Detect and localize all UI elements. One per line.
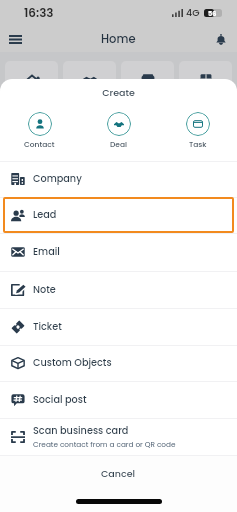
staticText: Home xyxy=(101,31,136,47)
button[interactable]: Shortcut xyxy=(179,61,232,99)
button[interactable]: Shortcut xyxy=(63,61,116,99)
button[interactable]: Email xyxy=(0,233,237,271)
staticText: Task xyxy=(189,139,207,149)
staticText: Create contact from a card or QR code xyxy=(33,439,176,449)
staticText: Scan business card xyxy=(33,424,129,438)
staticText: Cancel xyxy=(101,467,136,480)
staticText: Note xyxy=(33,283,56,297)
staticText: Deal xyxy=(110,139,128,149)
button[interactable]: Company xyxy=(0,161,237,197)
staticText: 16:33 xyxy=(24,4,54,21)
staticText: Company xyxy=(33,172,82,186)
button[interactable]: Ticket xyxy=(0,308,237,345)
staticText: Contact xyxy=(24,139,55,149)
staticText: Create xyxy=(0,86,237,99)
button[interactable]: Task xyxy=(158,110,237,151)
button[interactable]: Contact xyxy=(0,110,79,151)
button[interactable]: Note xyxy=(0,271,237,308)
button[interactable]: Shortcut xyxy=(121,61,174,99)
staticText: Custom Objects xyxy=(33,356,112,370)
button[interactable]: Cancel xyxy=(79,456,158,491)
button[interactable]: Lead xyxy=(3,197,234,233)
staticText: Ticket xyxy=(33,320,62,334)
staticText: 56 xyxy=(208,9,217,17)
button[interactable]: Shortcut xyxy=(5,61,58,99)
button[interactable]: Notifications xyxy=(208,30,237,49)
staticText: Lead xyxy=(33,208,57,222)
staticText: Email xyxy=(33,245,60,259)
button[interactable]: Menu xyxy=(0,29,31,50)
button[interactable]: Scan business card xyxy=(0,418,237,455)
staticText: Social post xyxy=(33,393,87,407)
button[interactable]: Custom Objects xyxy=(0,345,237,381)
button[interactable]: Deal xyxy=(79,110,158,151)
button[interactable]: Social post xyxy=(0,381,237,418)
staticText: 4G xyxy=(186,6,200,19)
